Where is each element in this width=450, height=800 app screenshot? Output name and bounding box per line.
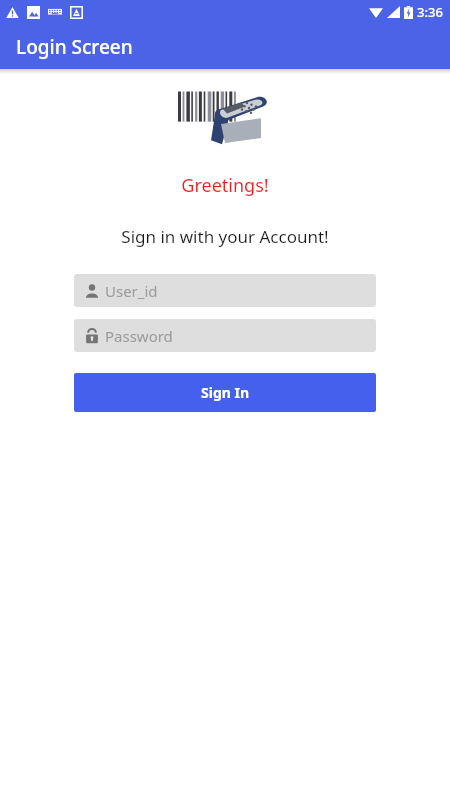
- staticText: Sign in with your Account!: [0, 225, 450, 248]
- staticText: Sign In: [201, 383, 250, 402]
- button[interactable]: User_id: [74, 274, 376, 307]
- staticText: Login Screen: [16, 34, 133, 60]
- staticText: Password: [105, 326, 173, 346]
- staticText: Greetings!: [0, 173, 450, 198]
- staticText: User_id: [105, 281, 158, 301]
- button[interactable]: Password: [74, 319, 376, 352]
- button[interactable]: Sign In: [74, 373, 376, 412]
- staticText: 3:36: [417, 3, 443, 21]
